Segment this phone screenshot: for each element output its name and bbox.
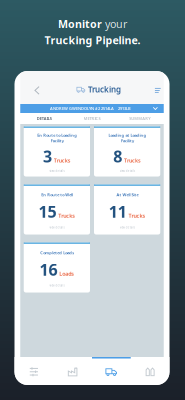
staticText: 8 <box>113 146 122 167</box>
staticText: Trucks <box>124 157 141 164</box>
staticText: 16 <box>40 259 58 280</box>
button[interactable]: Back <box>27 80 47 100</box>
staticText: 11 <box>109 201 127 222</box>
staticText: METRICS <box>83 116 100 121</box>
staticText: Trucking Pipeline. <box>44 33 140 47</box>
button[interactable]: Tanks <box>131 357 170 385</box>
staticText: view details <box>120 226 135 229</box>
button[interactable]: Trucking <box>92 357 131 385</box>
staticText: 3 <box>43 146 52 167</box>
button[interactable]: Facilities <box>53 357 92 385</box>
button[interactable]: En Route to Well <box>24 184 90 234</box>
staticText: view details <box>120 169 135 173</box>
button[interactable]: At Well Site <box>94 184 160 234</box>
button[interactable]: Completed Loads <box>24 242 90 292</box>
staticText: Monitor <box>58 17 102 31</box>
button[interactable]: Loading at Loading Facility <box>94 126 160 176</box>
button[interactable]: En Route to Loading Facility <box>24 126 90 176</box>
staticText: Completed Loads <box>40 250 74 255</box>
staticText: Loads <box>59 270 74 277</box>
staticText: view details <box>49 169 64 173</box>
button[interactable]: SUMMARY <box>116 113 164 124</box>
staticText: At Well Site <box>116 192 138 197</box>
staticText: your <box>105 17 127 31</box>
button[interactable]: ANDREW GWENDOLYN #2 2514LA 2913LB <box>20 104 164 113</box>
staticText: view details <box>49 284 64 287</box>
staticText: view details <box>49 226 64 229</box>
button[interactable]: Filter <box>149 81 167 99</box>
staticText: SUMMARY <box>129 116 150 121</box>
staticText: En Route to Loading Facility <box>37 133 77 143</box>
staticText: DETAILS <box>37 116 52 121</box>
staticText: En Route to Well <box>41 192 73 197</box>
button[interactable]: Dispatch <box>14 357 53 385</box>
staticText: Loading at Loading Facility <box>108 133 146 143</box>
button[interactable]: METRICS <box>68 113 116 124</box>
staticText: Trucking <box>88 84 121 95</box>
button[interactable]: DETAILS <box>20 113 68 124</box>
staticText: Trucks <box>54 157 71 164</box>
staticText: Trucks <box>128 212 145 219</box>
staticText: 15 <box>39 201 57 222</box>
staticText: Trucks <box>58 212 75 219</box>
staticText: ANDREW GWENDOLYN #2 2514LA 2913LB <box>50 106 131 111</box>
